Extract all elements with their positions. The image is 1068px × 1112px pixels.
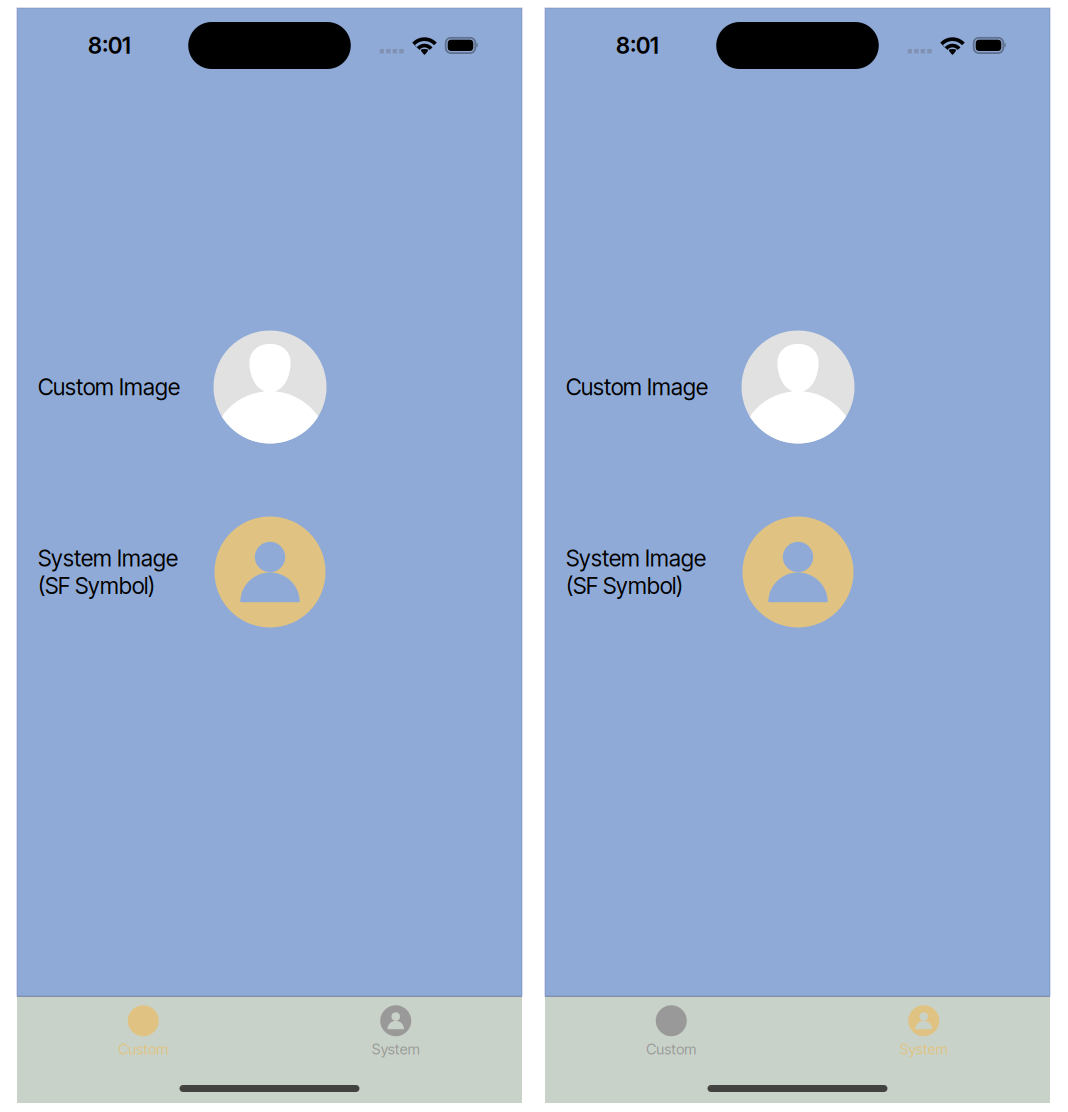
- staticText: Custom: [646, 1040, 696, 1058]
- staticText: Custom: [118, 1040, 168, 1058]
- staticText: System Image (SF Symbol): [566, 545, 706, 599]
- staticText: System Image (SF Symbol): [38, 545, 178, 599]
- staticText: Custom Image: [38, 373, 180, 401]
- staticText: Custom Image: [566, 373, 708, 401]
- staticText: System: [372, 1040, 420, 1058]
- staticText: 8:01: [616, 32, 659, 59]
- button[interactable]: Custom: [545, 996, 797, 1074]
- button[interactable]: System: [269, 996, 522, 1074]
- staticText: 8:01: [88, 32, 131, 59]
- button[interactable]: System: [797, 996, 1050, 1074]
- staticText: System: [900, 1040, 948, 1058]
- button[interactable]: Custom: [17, 996, 269, 1074]
